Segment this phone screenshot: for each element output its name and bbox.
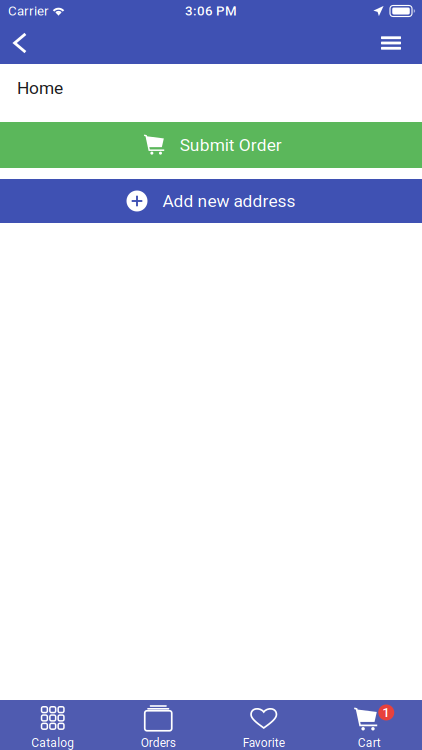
- button[interactable]: Catalog: [0, 700, 105, 750]
- button[interactable]: Menu: [371, 22, 411, 64]
- staticText: Submit Order: [180, 135, 282, 155]
- staticText: 1: [382, 705, 390, 720]
- staticText: Add new address: [162, 191, 295, 211]
- staticText: Carrier: [8, 3, 49, 19]
- button[interactable]: 1: [316, 700, 422, 750]
- staticText: 3:06 PM: [185, 3, 237, 19]
- staticText: Catalog: [31, 736, 74, 750]
- staticText: Favorite: [243, 736, 285, 750]
- button[interactable]: Favorite: [211, 700, 316, 750]
- button[interactable]: Submit Order: [0, 122, 422, 168]
- button[interactable]: Orders: [105, 700, 211, 750]
- staticText: Home: [17, 78, 63, 98]
- staticText: Orders: [141, 736, 176, 750]
- staticText: Cart: [358, 736, 381, 750]
- button[interactable]: Back: [0, 22, 40, 64]
- button[interactable]: Add new address: [0, 179, 422, 223]
